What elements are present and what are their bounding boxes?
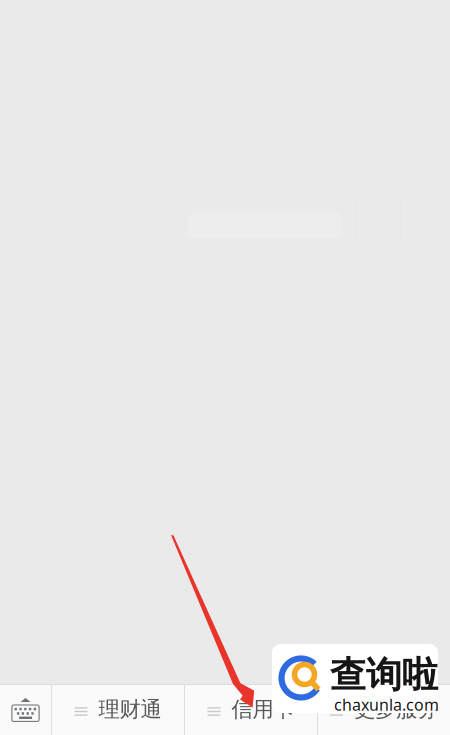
staticText: 更多服务 [354, 696, 438, 723]
staticText: 查询啦 [330, 653, 438, 697]
button[interactable]: Keyboard [0, 684, 51, 735]
button[interactable]: 更多服务 [318, 684, 450, 735]
staticText: 理财通 [98, 696, 161, 723]
button[interactable]: 信用卡 [185, 684, 317, 735]
staticText: chaxunla.com [334, 694, 439, 715]
staticText: 信用卡 [231, 696, 294, 723]
button[interactable]: 理财通 [52, 684, 184, 735]
